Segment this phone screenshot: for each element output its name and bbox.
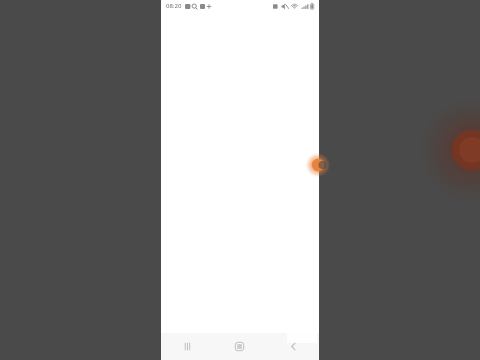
staticText: 08:20: [166, 2, 182, 10]
button[interactable]: Home: [213, 333, 266, 360]
button[interactable]: Back: [266, 333, 319, 360]
button[interactable]: Recent apps: [161, 333, 213, 360]
